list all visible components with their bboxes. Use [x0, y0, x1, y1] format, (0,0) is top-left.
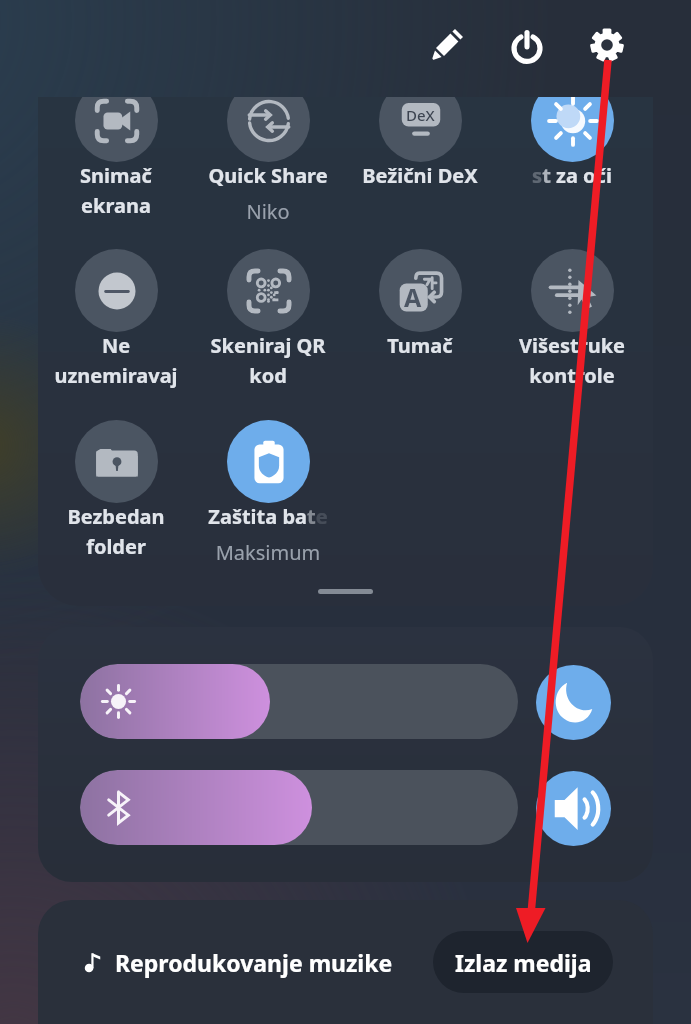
button[interactable]: Edit [427, 25, 467, 65]
staticText: Niko [192, 198, 344, 225]
staticText: Bezbedan folder [40, 503, 192, 560]
staticText: Bežični DeX [344, 162, 496, 189]
staticText: Tumač [344, 332, 496, 359]
button[interactable]: Quick Share [192, 97, 344, 244]
button[interactable]: DeX [344, 97, 496, 244]
staticText: DeX [406, 105, 435, 125]
button[interactable]: Night mode [536, 665, 611, 740]
button[interactable]: Zaštita bate [192, 420, 344, 585]
button[interactable]: Ne uznemiravaj [40, 249, 192, 414]
staticText: Zaštita bate [192, 503, 344, 530]
staticText: A [404, 280, 422, 314]
button[interactable]: Settings [587, 25, 627, 65]
staticText: st za oči [496, 162, 648, 189]
button[interactable]: A [344, 249, 496, 414]
button[interactable]: Power [507, 26, 547, 66]
button[interactable]: Reprodukovanje muzike [81, 931, 393, 993]
button[interactable]: Bluetooth [80, 770, 518, 845]
staticText: Maksimum [192, 539, 344, 566]
button[interactable]: Skeniraj QR kod [192, 249, 344, 414]
button[interactable]: st za oči [496, 97, 648, 244]
staticText: Reprodukovanje muzike [115, 947, 393, 978]
button[interactable]: Snimač ekrana [40, 97, 192, 244]
button[interactable]: Bezbedan folder [40, 420, 192, 585]
button[interactable]: Izlaz medija [433, 931, 613, 993]
staticText: Izlaz medija [455, 947, 592, 978]
button[interactable]: Višestruke kontrole [496, 249, 648, 414]
button[interactable]: Volume [536, 771, 611, 846]
staticText: Skeniraj QR kod [192, 332, 344, 389]
staticText: Višestruke kontrole [496, 332, 648, 389]
staticText: Quick Share [192, 162, 344, 189]
staticText: Ne uznemiravaj [40, 332, 192, 389]
button[interactable]: Brightness [80, 664, 518, 739]
staticText: Snimač ekrana [40, 162, 192, 219]
